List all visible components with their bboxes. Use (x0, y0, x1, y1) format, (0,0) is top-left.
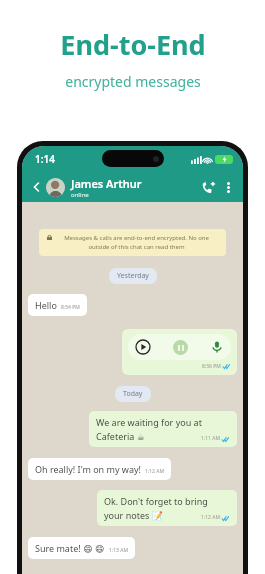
button[interactable]: Oh really! I'm on my way! (28, 458, 171, 480)
other: Microphone (210, 340, 224, 354)
staticText: James Arthur (71, 176, 142, 191)
staticText: Today (123, 389, 143, 399)
staticText: Yesterday (117, 271, 149, 281)
button[interactable]: Back (29, 179, 45, 195)
button[interactable]: Sure mate! 😄 😄 (28, 537, 135, 559)
button[interactable]: James Arthur (71, 176, 198, 199)
button[interactable]: Call (198, 177, 218, 197)
staticText: online (71, 191, 89, 199)
staticText: End-to-End (60, 26, 206, 63)
staticText: 8:56 PM (202, 363, 221, 370)
staticText: Oh really! I'm on my way! (35, 463, 141, 475)
staticText: 1:12 AM (145, 468, 164, 475)
button[interactable]: Play voice message (122, 329, 237, 375)
button[interactable]: We are waiting for you at (89, 411, 237, 447)
staticText: your notes 📝 (104, 509, 163, 521)
staticText: Messages & calls are end-to-end encrypte… (55, 234, 218, 251)
staticText: Sure mate! 😄 😄 (35, 542, 105, 554)
staticText: 1:12 AM (201, 514, 220, 521)
button[interactable]: Pause (173, 340, 188, 355)
button[interactable]: Hello (28, 294, 87, 316)
staticText: 1:13 AM (109, 547, 128, 554)
button[interactable]: Profile photo (46, 178, 65, 197)
staticText: We are waiting for you at (96, 416, 202, 428)
staticText: 8:54 PM (61, 304, 80, 311)
button[interactable]: Ok. Don't forget to bring (97, 490, 237, 526)
button[interactable]: Play voice message (135, 339, 151, 355)
button[interactable]: More options (220, 179, 236, 195)
staticText: Cafeteria ☕ (96, 430, 145, 442)
staticText: 1:14 (35, 152, 55, 166)
staticText: 1:11 AM (201, 435, 220, 442)
staticText: Ok. Don't forget to bring (104, 495, 208, 507)
staticText: encrypted messages (65, 72, 201, 91)
staticText: Hello (35, 299, 57, 311)
